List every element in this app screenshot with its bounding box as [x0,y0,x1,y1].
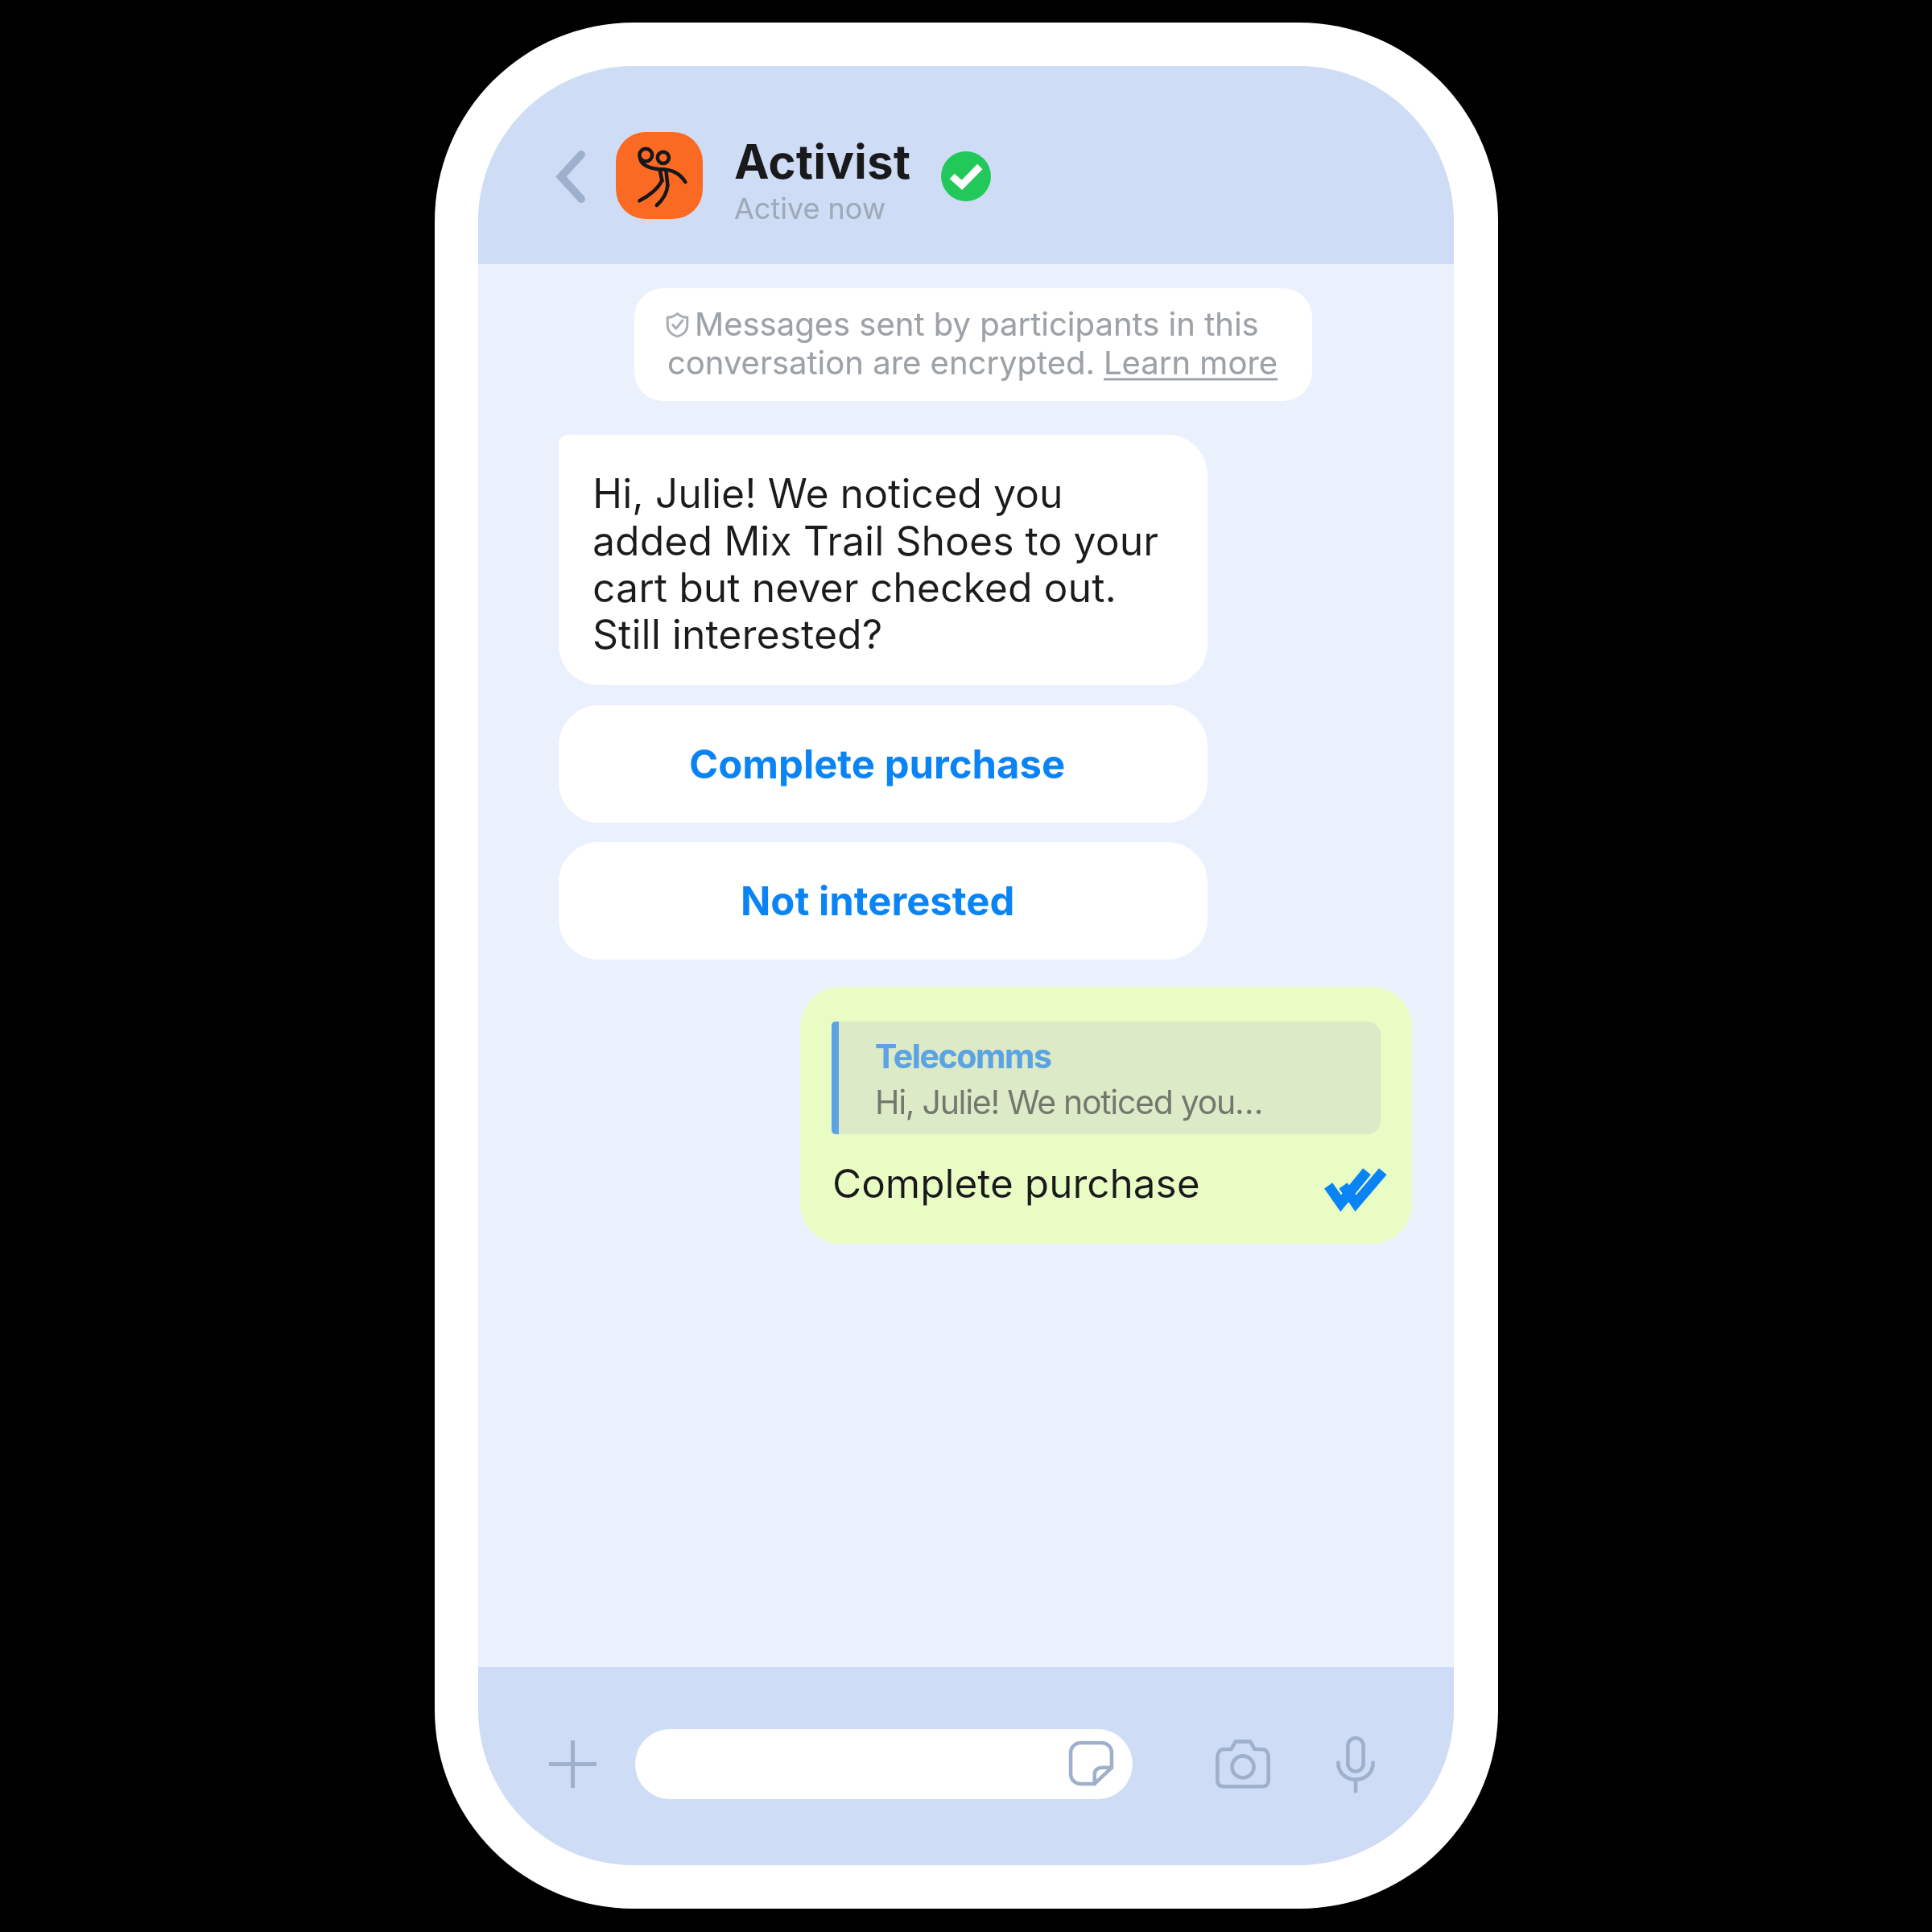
button[interactable]: Voice message [1319,1727,1393,1801]
button[interactable]: Telecomms [800,987,1412,1244]
staticText: Not interested [741,877,1015,925]
button[interactable]: Message [635,1729,1133,1799]
staticText: conversation are encrypted. [667,343,1104,382]
staticText: Telecomms [875,1036,1051,1076]
button[interactable]: Hi, Julie! We noticed you added Mix Trai… [559,435,1207,685]
button[interactable]: Back [538,136,604,217]
button[interactable]: Complete purchase [559,705,1207,823]
staticText: Activist [734,133,911,190]
staticText: Hi, Julie! We noticed you added Mix Trai… [592,469,1180,658]
button[interactable]: Not interested [559,842,1207,960]
staticText: Active now [734,191,886,226]
button[interactable]: Verified [941,151,991,201]
staticText: Messages sent by participants in this [695,304,1259,343]
staticText: Complete purchase [689,741,1066,788]
button[interactable]: Learn more [1104,343,1278,382]
staticText: Learn more [1104,343,1278,382]
button[interactable]: Camera [1203,1727,1282,1801]
button[interactable]: Messages sent by participants in this [634,288,1312,401]
button[interactable]: Add attachment [535,1727,609,1801]
button[interactable]: Activist profile photo [616,132,703,219]
staticText: Hi, Julie! We noticed you… [875,1082,1263,1122]
staticText: Complete purchase [832,1159,1200,1207]
